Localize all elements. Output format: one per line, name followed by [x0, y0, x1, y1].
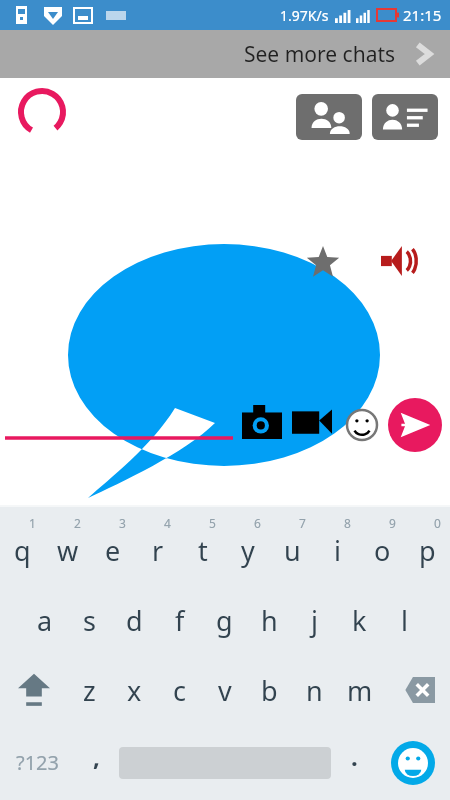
- staticText: v: [218, 672, 232, 709]
- button[interactable]: See more chats: [0, 30, 450, 78]
- button[interactable]: Sound: [381, 246, 417, 276]
- staticText: z: [83, 672, 96, 709]
- button[interactable]: l: [382, 585, 427, 655]
- staticText: .: [351, 740, 358, 773]
- staticText: 4: [164, 515, 171, 531]
- staticText: b: [261, 672, 278, 709]
- button[interactable]: Group chat: [296, 94, 362, 140]
- button[interactable]: s: [67, 585, 112, 655]
- staticText: o: [374, 532, 391, 569]
- staticText: 6: [254, 515, 261, 531]
- staticText: h: [261, 602, 278, 639]
- staticText: r: [152, 532, 164, 569]
- button[interactable]: Loading: [21, 91, 63, 133]
- button[interactable]: Favorite: [306, 246, 340, 280]
- button[interactable]: 7: [270, 507, 315, 585]
- staticText: 8: [344, 515, 351, 531]
- button[interactable]: 2: [45, 507, 90, 585]
- button[interactable]: Camera: [242, 405, 282, 439]
- staticText: d: [126, 602, 143, 639]
- button[interactable]: .: [333, 725, 375, 800]
- button[interactable]: g: [202, 585, 247, 655]
- staticText: l: [401, 602, 408, 639]
- staticText: 0: [434, 515, 441, 531]
- button[interactable]: 8: [315, 507, 360, 585]
- staticText: m: [347, 672, 373, 709]
- staticText: j: [311, 602, 318, 639]
- button[interactable]: 3: [90, 507, 135, 585]
- staticText: 1.97K/s: [280, 6, 329, 25]
- button[interactable]: Contacts: [372, 94, 438, 140]
- button[interactable]: c: [157, 655, 202, 725]
- button[interactable]: n: [292, 655, 337, 725]
- staticText: x: [127, 672, 142, 709]
- staticText: g: [216, 602, 233, 639]
- staticText: 5: [209, 515, 216, 531]
- button[interactable]: a: [22, 585, 67, 655]
- staticText: n: [306, 672, 323, 709]
- button[interactable]: 1: [0, 507, 45, 585]
- button[interactable]: h: [247, 585, 292, 655]
- button[interactable]: ?123: [0, 725, 75, 800]
- staticText: ,: [93, 740, 100, 773]
- button[interactable]: z: [67, 655, 112, 725]
- button[interactable]: f: [157, 585, 202, 655]
- button[interactable]: 9: [360, 507, 405, 585]
- button[interactable]: 0: [405, 507, 450, 585]
- staticText: t: [198, 532, 208, 569]
- button[interactable]: Backspace: [382, 655, 450, 725]
- button[interactable]: 5: [180, 507, 225, 585]
- staticText: 1: [29, 515, 36, 531]
- staticText: f: [175, 602, 185, 639]
- staticText: a: [37, 602, 53, 639]
- button[interactable]: Shift: [0, 655, 67, 725]
- staticText: See more chats: [244, 40, 396, 69]
- button[interactable]: m: [337, 655, 382, 725]
- staticText: u: [284, 532, 301, 569]
- staticText: 7: [299, 515, 306, 531]
- button[interactable]: v: [202, 655, 247, 725]
- staticText: s: [83, 602, 96, 639]
- staticText: p: [419, 532, 436, 569]
- staticText: 9: [389, 515, 396, 531]
- staticText: q: [14, 532, 31, 569]
- staticText: y: [241, 532, 255, 569]
- staticText: w: [57, 532, 79, 569]
- button[interactable]: 4: [135, 507, 180, 585]
- staticText: 2: [74, 515, 81, 531]
- button[interactable]: k: [337, 585, 382, 655]
- button[interactable]: Send: [388, 398, 442, 452]
- staticText: 3: [119, 515, 126, 531]
- staticText: 21:15: [403, 5, 442, 25]
- button[interactable]: x: [112, 655, 157, 725]
- button[interactable]: d: [112, 585, 157, 655]
- button[interactable]: 6: [225, 507, 270, 585]
- staticText: c: [173, 672, 186, 709]
- button[interactable]: j: [292, 585, 337, 655]
- staticText: k: [352, 602, 367, 639]
- button[interactable]: Video: [292, 408, 332, 436]
- staticText: ?123: [16, 749, 59, 776]
- button[interactable]: Emoji keyboard: [375, 725, 450, 800]
- button[interactable]: b: [247, 655, 292, 725]
- button[interactable]: ,: [75, 725, 117, 800]
- button[interactable]: Emoji: [345, 408, 379, 442]
- staticText: i: [334, 532, 341, 569]
- staticText: e: [105, 532, 121, 569]
